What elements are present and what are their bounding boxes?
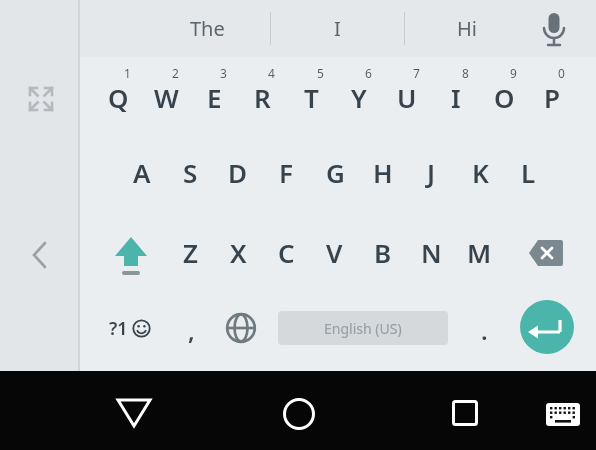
button[interactable]: E — [190, 69, 238, 125]
staticText: ?1 — [109, 316, 128, 341]
button[interactable] — [522, 228, 570, 276]
staticText: Y — [351, 80, 367, 115]
button[interactable]: K — [456, 144, 504, 200]
staticText: 8 — [462, 65, 469, 81]
button[interactable]: J — [407, 144, 455, 200]
staticText: Hi — [457, 15, 477, 42]
staticText: 3 — [220, 65, 227, 81]
staticText: M — [467, 235, 492, 270]
button[interactable] — [520, 300, 574, 354]
button[interactable] — [110, 389, 158, 437]
button[interactable] — [24, 237, 56, 273]
staticText: H — [373, 155, 393, 190]
staticText: J — [427, 155, 436, 190]
staticText: Z — [183, 235, 198, 270]
button[interactable]: P — [528, 69, 576, 125]
staticText: O — [494, 80, 515, 115]
button[interactable] — [534, 8, 574, 52]
button[interactable]: F — [262, 144, 310, 200]
button[interactable]: Q — [94, 69, 142, 125]
staticText: U — [397, 80, 417, 115]
staticText: W — [154, 80, 179, 115]
staticText: 6 — [365, 65, 372, 81]
staticText: 1 — [124, 65, 131, 81]
staticText: 2 — [172, 65, 179, 81]
button[interactable]: The — [152, 0, 262, 56]
button[interactable] — [541, 395, 585, 431]
staticText: I — [334, 15, 341, 42]
staticText: X — [230, 235, 247, 270]
button[interactable]: S — [166, 144, 214, 200]
staticText: . — [481, 314, 488, 347]
button[interactable]: ?1 — [90, 300, 146, 356]
staticText: K — [472, 155, 489, 190]
staticText: I — [451, 80, 461, 115]
button[interactable]: N — [407, 224, 455, 280]
button[interactable]: T — [287, 69, 335, 125]
button[interactable]: H — [359, 144, 407, 200]
staticText: T — [304, 80, 319, 115]
staticText: L — [521, 155, 536, 190]
staticText: C — [278, 235, 295, 270]
staticText: 9 — [510, 65, 517, 81]
button[interactable]: W — [142, 69, 190, 125]
button[interactable]: I — [432, 69, 480, 125]
button[interactable]: X — [214, 224, 262, 280]
staticText: 4 — [268, 65, 275, 81]
button[interactable]: L — [504, 144, 552, 200]
staticText: Q — [108, 80, 129, 115]
staticText: A — [133, 155, 151, 190]
button[interactable] — [275, 390, 323, 438]
staticText: D — [228, 155, 248, 190]
staticText: V — [326, 235, 343, 270]
button[interactable]: B — [359, 224, 407, 280]
button[interactable]: Z — [166, 224, 214, 280]
button[interactable]: M — [455, 224, 503, 280]
button[interactable]: G — [311, 144, 359, 200]
button[interactable]: R — [238, 69, 286, 125]
staticText: 7 — [413, 65, 420, 81]
button[interactable]: D — [214, 144, 262, 200]
button[interactable]: C — [262, 224, 310, 280]
staticText: F — [279, 155, 293, 190]
staticText: E — [207, 80, 222, 115]
button[interactable]: I — [282, 0, 392, 56]
staticText: B — [374, 235, 392, 270]
button[interactable]: U — [383, 69, 431, 125]
button[interactable]: , — [171, 302, 211, 358]
button[interactable] — [27, 85, 55, 113]
staticText: R — [254, 80, 271, 115]
button[interactable]: . — [464, 302, 504, 358]
button[interactable]: V — [310, 224, 358, 280]
button[interactable] — [441, 389, 489, 437]
staticText: P — [544, 80, 560, 115]
staticText: S — [183, 155, 198, 190]
staticText: English (US) — [324, 319, 402, 338]
button[interactable]: O — [480, 69, 528, 125]
staticText: 5 — [317, 65, 324, 81]
button[interactable]: Hi — [417, 0, 517, 56]
staticText: The — [190, 15, 225, 42]
staticText: G — [326, 155, 345, 190]
staticText: 0 — [558, 65, 565, 81]
staticText: , — [188, 314, 195, 347]
button[interactable]: Y — [335, 69, 383, 125]
button[interactable]: A — [118, 144, 166, 200]
button[interactable] — [107, 228, 155, 280]
button[interactable] — [219, 306, 263, 350]
staticText: N — [421, 235, 442, 270]
button[interactable]: English (US) — [278, 311, 448, 345]
